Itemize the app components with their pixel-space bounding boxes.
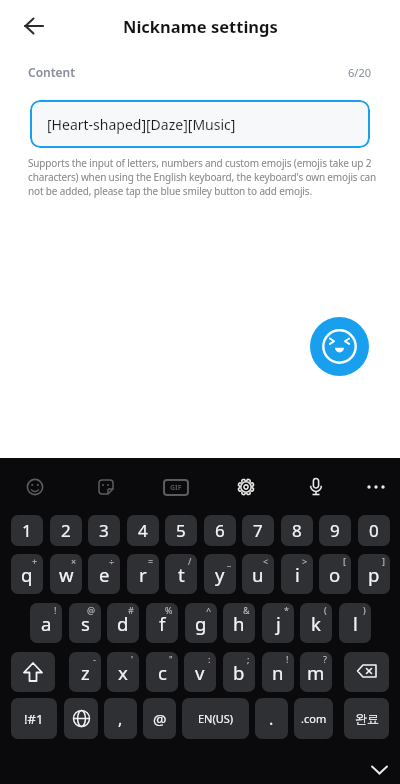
button[interactable]: k: [300, 603, 332, 643]
button[interactable]: c: [146, 652, 178, 692]
button[interactable]: 9: [319, 515, 351, 546]
staticText: a: [41, 611, 52, 636]
button[interactable]: r: [127, 554, 159, 594]
button[interactable]: [Heart-shaped][Daze][Music]: [30, 100, 370, 148]
button[interactable]: b: [223, 652, 255, 692]
staticText: u: [252, 562, 264, 587]
staticText: [: [343, 555, 346, 567]
button[interactable]: [11, 652, 55, 692]
button[interactable]: 3: [88, 515, 120, 546]
staticText: m: [307, 660, 325, 685]
staticText: ": [169, 653, 173, 665]
staticText: :: [208, 653, 211, 665]
staticText: *: [284, 604, 289, 616]
staticText: ;: [247, 653, 250, 665]
button[interactable]: 5: [165, 515, 197, 546]
staticText: 6/20: [348, 65, 371, 80]
button[interactable]: [230, 471, 262, 503]
staticText: ÷: [109, 555, 115, 567]
button[interactable]: .: [255, 698, 288, 739]
button[interactable]: @: [143, 698, 176, 739]
button[interactable]: e: [88, 554, 120, 594]
button[interactable]: 1: [11, 515, 43, 546]
staticText: ): [363, 604, 366, 616]
staticText: _: [227, 555, 231, 567]
button[interactable]: w: [50, 554, 82, 594]
button[interactable]: v: [184, 652, 216, 692]
staticText: ×: [71, 555, 77, 567]
staticText: j: [276, 611, 281, 636]
staticText: 완료: [355, 711, 379, 726]
staticText: 7: [253, 519, 263, 542]
button[interactable]: 6: [204, 515, 236, 546]
staticText: @: [87, 604, 96, 616]
button[interactable]: EN(US): [182, 698, 249, 739]
staticText: w: [59, 562, 74, 587]
staticText: c: [158, 660, 167, 685]
button[interactable]: q: [11, 554, 43, 594]
button[interactable]: x: [107, 652, 139, 692]
button[interactable]: n: [262, 652, 294, 692]
staticText: q: [21, 562, 33, 587]
button[interactable]: ,: [104, 698, 137, 739]
button[interactable]: f: [146, 603, 178, 643]
staticText: 0: [369, 519, 379, 542]
button[interactable]: a: [30, 603, 62, 643]
button[interactable]: 완료: [344, 698, 389, 739]
staticText: =: [148, 555, 154, 567]
button[interactable]: o: [319, 554, 351, 594]
button[interactable]: j: [262, 603, 294, 643]
button[interactable]: t: [165, 554, 197, 594]
staticText: e: [99, 562, 110, 587]
staticText: v: [195, 660, 205, 685]
staticText: [Heart-shaped][Daze][Music]: [47, 115, 236, 134]
button[interactable]: [344, 652, 389, 692]
staticText: ,: [118, 708, 123, 730]
staticText: /: [188, 555, 192, 567]
button[interactable]: GIF: [163, 479, 189, 496]
staticText: 2: [61, 519, 71, 542]
button[interactable]: d: [107, 603, 139, 643]
staticText: not be added, please tap the blue smiley…: [28, 184, 312, 198]
staticText: <: [263, 555, 269, 567]
staticText: n: [272, 660, 284, 685]
staticText: l: [353, 611, 358, 636]
button[interactable]: i: [281, 554, 313, 594]
staticText: ]: [382, 555, 385, 567]
button[interactable]: [310, 317, 369, 376]
staticText: s: [81, 611, 90, 636]
staticText: !#1: [24, 710, 44, 728]
button[interactable]: m: [300, 652, 332, 692]
button[interactable]: g: [185, 603, 217, 643]
button[interactable]: [362, 758, 396, 782]
staticText: characters) when using the English keybo…: [28, 170, 377, 184]
button[interactable]: [360, 471, 392, 503]
staticText: f: [159, 611, 166, 636]
button[interactable]: [300, 471, 332, 503]
staticText: .com: [301, 711, 327, 726]
button[interactable]: 4: [127, 515, 159, 546]
staticText: .: [269, 708, 274, 730]
staticText: 8: [292, 519, 302, 542]
staticText: z: [81, 660, 90, 685]
button[interactable]: z: [69, 652, 101, 692]
button[interactable]: [19, 471, 51, 503]
staticText: -: [93, 653, 96, 665]
button[interactable]: [90, 471, 122, 503]
button[interactable]: .com: [294, 698, 333, 739]
button[interactable]: u: [242, 554, 274, 594]
button[interactable]: 8: [281, 515, 313, 546]
button[interactable]: [14, 6, 54, 46]
button[interactable]: 2: [50, 515, 82, 546]
button[interactable]: p: [358, 554, 390, 594]
staticText: g: [195, 611, 207, 636]
button[interactable]: [64, 698, 98, 739]
button[interactable]: 0: [358, 515, 390, 546]
button[interactable]: l: [339, 603, 371, 643]
button[interactable]: h: [223, 603, 255, 643]
button[interactable]: y: [204, 554, 236, 594]
button[interactable]: s: [69, 603, 101, 643]
button[interactable]: !#1: [11, 698, 57, 739]
staticText: ': [131, 653, 134, 665]
button[interactable]: 7: [242, 515, 274, 546]
